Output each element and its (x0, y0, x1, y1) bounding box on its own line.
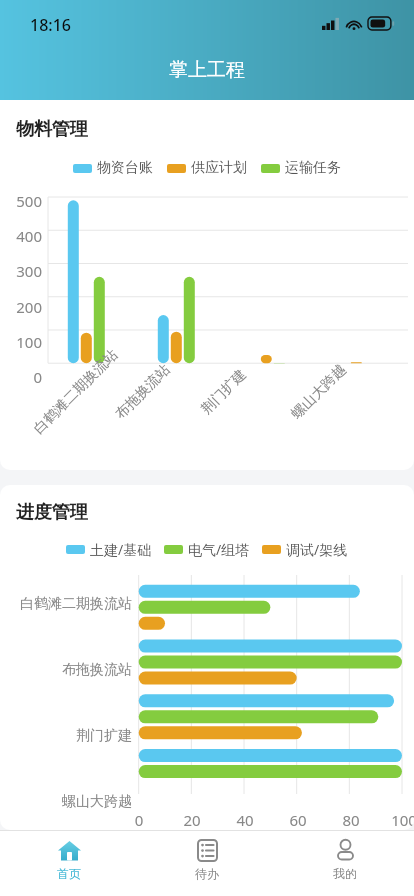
button[interactable]: 我的 (276, 831, 414, 896)
staticText: 500 (6, 191, 42, 211)
staticText: 我的 (333, 866, 357, 881)
staticText: 300 (6, 261, 42, 281)
staticText: 进度管理 (16, 501, 88, 524)
staticText: 荆门扩建 (0, 727, 132, 745)
staticText: 首页 (57, 866, 81, 881)
staticText: 电气/组塔 (188, 540, 250, 559)
staticText: 白鹤滩二期换流站 (30, 346, 122, 438)
staticText: 200 (6, 297, 42, 317)
staticText: 螺山大跨越 (288, 361, 350, 423)
staticText: 掌上工程 (169, 58, 245, 82)
staticText: 调试/架线 (286, 540, 348, 559)
button[interactable]: 待办 (138, 831, 276, 896)
staticText: 60 (283, 810, 313, 830)
staticText: 荆门扩建 (198, 366, 250, 418)
staticText: 40 (230, 810, 260, 830)
staticText: 土建/基础 (90, 540, 152, 559)
staticText: 18:16 (30, 14, 71, 36)
staticText: 0 (124, 810, 154, 830)
staticText: 0 (6, 367, 42, 387)
staticText: 100 (389, 810, 414, 830)
staticText: 物料管理 (16, 118, 88, 141)
staticText: 80 (336, 810, 366, 830)
staticText: 供应计划 (191, 159, 247, 177)
staticText: 白鹤滩二期换流站 (0, 595, 132, 613)
staticText: 物资台账 (97, 159, 153, 177)
staticText: 400 (6, 226, 42, 246)
button[interactable]: 首页 (0, 831, 138, 896)
staticText: 布拖换流站 (112, 361, 174, 423)
staticText: 螺山大跨越 (0, 793, 132, 811)
staticText: 20 (177, 810, 207, 830)
staticText: 布拖换流站 (0, 661, 132, 679)
staticText: 100 (6, 332, 42, 352)
staticText: 待办 (195, 866, 219, 881)
staticText: 运输任务 (285, 159, 341, 177)
